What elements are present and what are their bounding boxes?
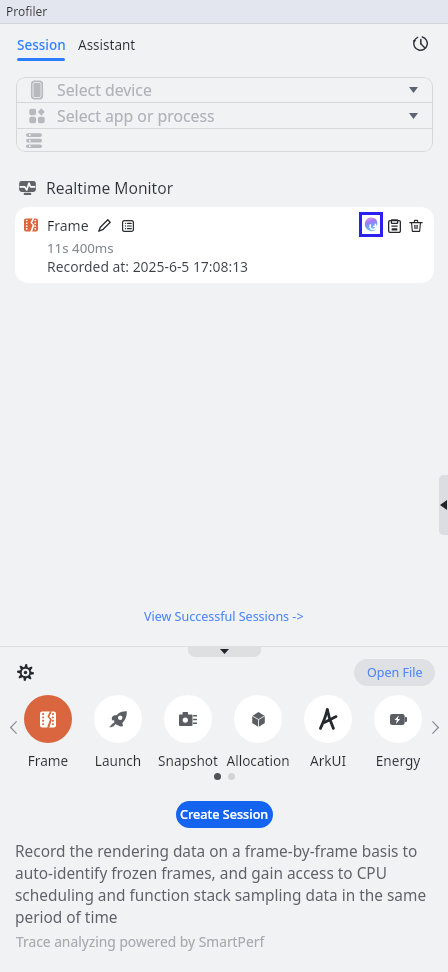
button[interactable]: Save xyxy=(384,216,404,236)
button[interactable]: Energy xyxy=(358,695,438,770)
staticText: Open File xyxy=(367,664,423,681)
staticText: Recorded at: 2025-6-5 17:08:13 xyxy=(47,257,249,276)
staticText: Assistant xyxy=(78,36,136,54)
staticText: Session xyxy=(17,36,66,54)
staticText: Energy xyxy=(358,751,438,770)
button[interactable]: Rename xyxy=(96,217,113,234)
button[interactable]: Select app or process xyxy=(16,103,433,128)
button[interactable]: ArkUI xyxy=(288,695,368,770)
button[interactable]: Previous xyxy=(3,717,23,737)
staticText: 11s 400ms xyxy=(47,239,114,257)
staticText: Record the rendering data on a frame-by-… xyxy=(15,841,433,928)
button[interactable]: Create Session xyxy=(176,801,273,828)
button[interactable]: Launch xyxy=(78,695,158,770)
staticText: Frame xyxy=(8,751,88,770)
button[interactable]: Open File xyxy=(354,659,435,686)
staticText: Create Session xyxy=(180,806,269,823)
staticText: Realtime Monitor xyxy=(46,177,174,198)
button[interactable] xyxy=(16,129,433,152)
staticText: Profiler xyxy=(6,3,48,19)
button[interactable]: Snapshot xyxy=(148,695,228,770)
staticText: Select app or process xyxy=(57,105,215,127)
button[interactable]: AI analysis xyxy=(359,212,383,237)
button[interactable]: Assistant xyxy=(78,36,136,54)
button[interactable]: Details xyxy=(119,217,136,234)
button[interactable]: Allocation xyxy=(218,695,298,770)
button[interactable]: View Successful Sessions -> xyxy=(144,608,304,625)
staticText: Launch xyxy=(78,751,158,770)
button[interactable]: Frame xyxy=(15,207,434,283)
button[interactable]: Session xyxy=(17,36,66,54)
button[interactable]: Frame xyxy=(8,695,88,770)
button[interactable]: Settings xyxy=(12,659,38,685)
staticText: View Successful Sessions -> xyxy=(144,608,304,625)
button[interactable]: Collapse panel xyxy=(439,475,448,535)
button[interactable]: Select device xyxy=(16,77,433,102)
button[interactable]: History xyxy=(408,31,432,55)
button[interactable]: Collapse xyxy=(188,646,261,657)
staticText: Select device xyxy=(57,79,152,101)
staticText: Trace analyzing powered by SmartPerf xyxy=(16,932,265,951)
staticText: Snapshot xyxy=(148,751,228,770)
staticText: Allocation xyxy=(218,751,298,770)
button[interactable]: Delete xyxy=(405,215,426,236)
staticText: Frame xyxy=(47,216,89,235)
staticText: ArkUI xyxy=(288,751,368,770)
button[interactable]: Next xyxy=(425,717,445,737)
